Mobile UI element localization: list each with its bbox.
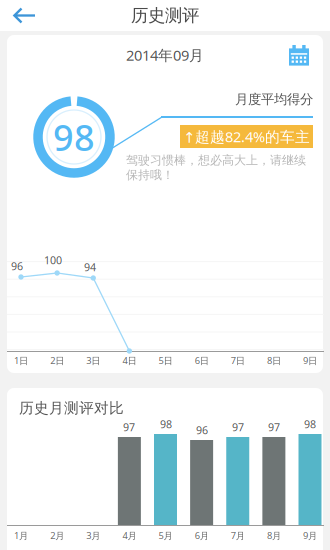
staticText: 1月 [14,529,28,542]
staticText: 9日 [303,354,317,367]
staticText: 94 [84,260,96,274]
staticText: 97 [232,420,244,434]
staticText: 97 [268,420,280,434]
staticText: 2月 [50,529,64,542]
staticText: 96 [196,423,208,437]
staticText: 9月 [303,529,317,542]
staticText: 历史测评 [131,5,199,26]
staticText: 8日 [267,354,281,367]
staticText: ↑超越82.4%的车主 [183,127,310,146]
staticText: 8月 [267,529,281,542]
staticText: 97 [123,420,135,434]
staticText: 3日 [86,354,100,367]
button[interactable]: Choose month [283,40,315,71]
staticText: 98 [53,113,95,161]
staticText: 98 [304,417,316,431]
staticText: 100 [44,253,62,267]
button[interactable]: Back [0,0,44,31]
staticText: 1日 [14,354,28,367]
staticText: 4月 [122,529,136,542]
staticText: 2014年09月 [126,45,204,65]
staticText: 98 [160,417,172,431]
staticText: 96 [11,259,23,273]
staticText: 5月 [158,529,172,542]
staticText: 5日 [158,354,172,367]
staticText: 7日 [231,354,245,367]
staticText: 4日 [122,354,136,367]
staticText: 7月 [231,529,245,542]
staticText: 6日 [195,354,209,367]
staticText: 3月 [86,529,100,542]
staticText: 历史月测评对比 [19,399,124,417]
staticText: 6月 [195,529,209,542]
staticText: 驾驶习惯棒，想必高大上，请继续保持哦！ [126,153,306,182]
staticText: 2日 [50,354,64,367]
staticText: 月度平均得分 [235,91,313,107]
